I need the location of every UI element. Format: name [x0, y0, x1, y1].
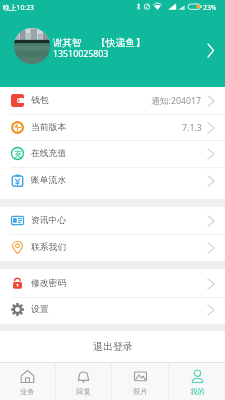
button[interactable]: 资讯中心	[0, 207, 225, 234]
button[interactable]: 谢其智	[0, 14, 225, 87]
button[interactable]: 修改密码	[0, 270, 225, 297]
button[interactable]: 钱包	[0, 87, 225, 114]
button[interactable]: 账单流水	[0, 167, 225, 194]
staticText: 联系我们	[31, 242, 67, 253]
button[interactable]: 设置	[0, 296, 225, 323]
button[interactable]: 充	[0, 140, 225, 167]
staticText: 业务	[20, 387, 35, 396]
staticText: 当前版本	[31, 122, 67, 133]
staticText: 在线充值	[31, 148, 67, 159]
button[interactable]: 业务	[0, 363, 55, 400]
staticText: 资讯中心	[31, 215, 67, 226]
button[interactable]: 退出登录	[0, 331, 225, 362]
staticText: 【快递鱼】	[96, 37, 145, 49]
staticText: 7.1.3	[182, 122, 202, 134]
button[interactable]: 照片	[112, 363, 168, 400]
button[interactable]: 回复	[56, 363, 111, 400]
staticText: 修改密码	[31, 278, 67, 289]
button[interactable]: 当前版本	[0, 114, 225, 141]
staticText: 账单流水	[31, 175, 67, 186]
staticText: 钱包	[31, 95, 49, 106]
button[interactable]: 我的	[169, 363, 225, 400]
staticText: 晚上10:23	[3, 3, 34, 12]
other: Profile detail	[207, 43, 215, 58]
staticText: 退出登录	[93, 340, 133, 353]
button[interactable]: 联系我们	[0, 234, 225, 261]
staticText: 充	[14, 149, 22, 159]
staticText: 13510025803	[53, 48, 109, 60]
staticText: 设置	[31, 304, 49, 315]
staticText: 通知:204017	[151, 95, 202, 107]
staticText: 我的	[190, 387, 205, 396]
staticText: 照片	[133, 387, 148, 396]
staticText: 谢其智	[53, 37, 82, 49]
staticText: 回复	[76, 387, 91, 396]
staticText: 23%	[203, 3, 217, 12]
